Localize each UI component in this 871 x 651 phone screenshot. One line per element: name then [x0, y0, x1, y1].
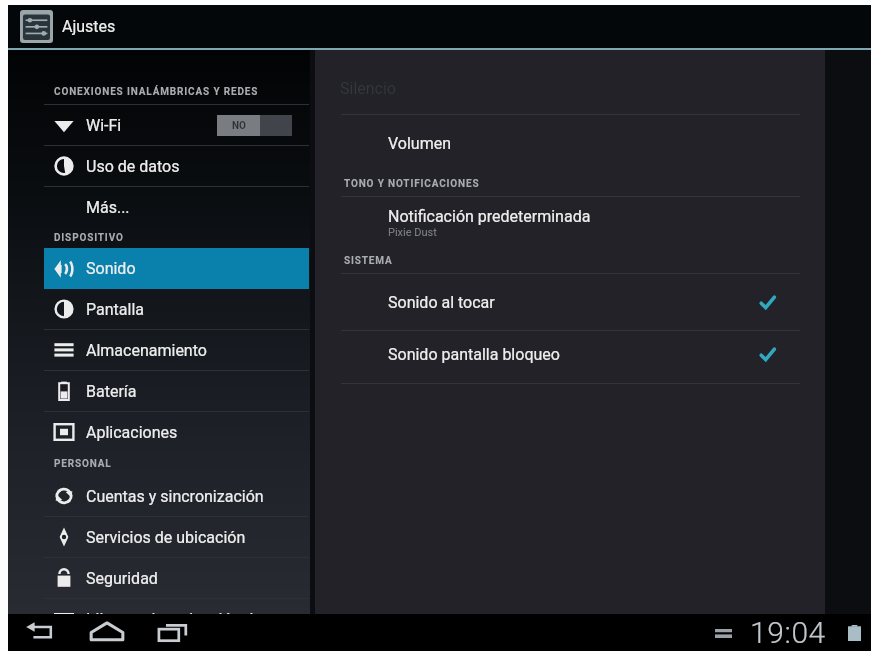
staticText: TONO Y NOTIFICACIONES [344, 178, 480, 190]
button[interactable]: Pantalla [44, 289, 309, 329]
staticText: SISTEMA [344, 255, 393, 267]
staticText: DISPOSITIVO [54, 232, 124, 244]
button[interactable]: Back [14, 616, 66, 649]
staticText: Sonido [86, 259, 136, 278]
button[interactable]: Wi-Fi [44, 105, 309, 145]
staticText: Wi-Fi [86, 116, 122, 135]
button[interactable]: Almacenamiento [44, 330, 309, 370]
staticText: Cuentas y sincronización [86, 487, 264, 506]
staticText: Idioma e introducción de texto [86, 610, 292, 614]
button[interactable]: Sonido pantalla bloqueo [315, 331, 825, 383]
button[interactable]: NO [217, 115, 292, 136]
staticText: Pixie Dust [388, 226, 437, 239]
staticText: CONEXIONES INALÁMBRICAS Y REDES [54, 86, 259, 98]
button[interactable]: Ajustes [20, 5, 871, 48]
button[interactable]: Recent apps [147, 616, 199, 649]
button[interactable]: Notificación predeterminada [315, 197, 825, 249]
button[interactable]: Aplicaciones [44, 412, 309, 452]
staticText: PERSONAL [54, 458, 112, 470]
button[interactable]: Seguridad [44, 558, 309, 598]
button[interactable]: Volumen [315, 115, 825, 172]
staticText: NO [232, 120, 246, 132]
button[interactable]: Servicios de ubicación [44, 517, 309, 557]
other: Ajustes [20, 10, 53, 43]
staticText: 19:04 [750, 615, 826, 650]
staticText: Almacenamiento [86, 341, 207, 360]
button[interactable]: Batería [44, 371, 309, 411]
staticText: Ajustes [62, 17, 116, 36]
staticText: Pantalla [86, 300, 144, 319]
staticText: Más... [86, 198, 130, 217]
button[interactable]: Home [81, 616, 133, 649]
staticText: Sonido al tocar [388, 293, 495, 312]
staticText: Notificación predeterminada [388, 207, 591, 226]
staticText: Volumen [388, 134, 452, 153]
button[interactable]: Idioma e introducción de texto [44, 599, 309, 614]
button[interactable]: Notifications [706, 618, 740, 648]
button[interactable]: Más... [44, 187, 309, 227]
button[interactable]: Sonido [44, 248, 309, 289]
staticText: Batería [86, 382, 137, 401]
staticText: Uso de datos [86, 157, 180, 176]
button[interactable]: Sonido al tocar [315, 274, 825, 330]
button[interactable]: Uso de datos [44, 146, 309, 186]
staticText: Seguridad [86, 569, 158, 588]
staticText: Silencio [340, 79, 396, 95]
staticText: Aplicaciones [86, 423, 178, 442]
button[interactable]: Cuentas y sincronización [44, 476, 309, 516]
staticText: Servicios de ubicación [86, 528, 246, 547]
staticText: Sonido pantalla bloqueo [388, 345, 560, 364]
